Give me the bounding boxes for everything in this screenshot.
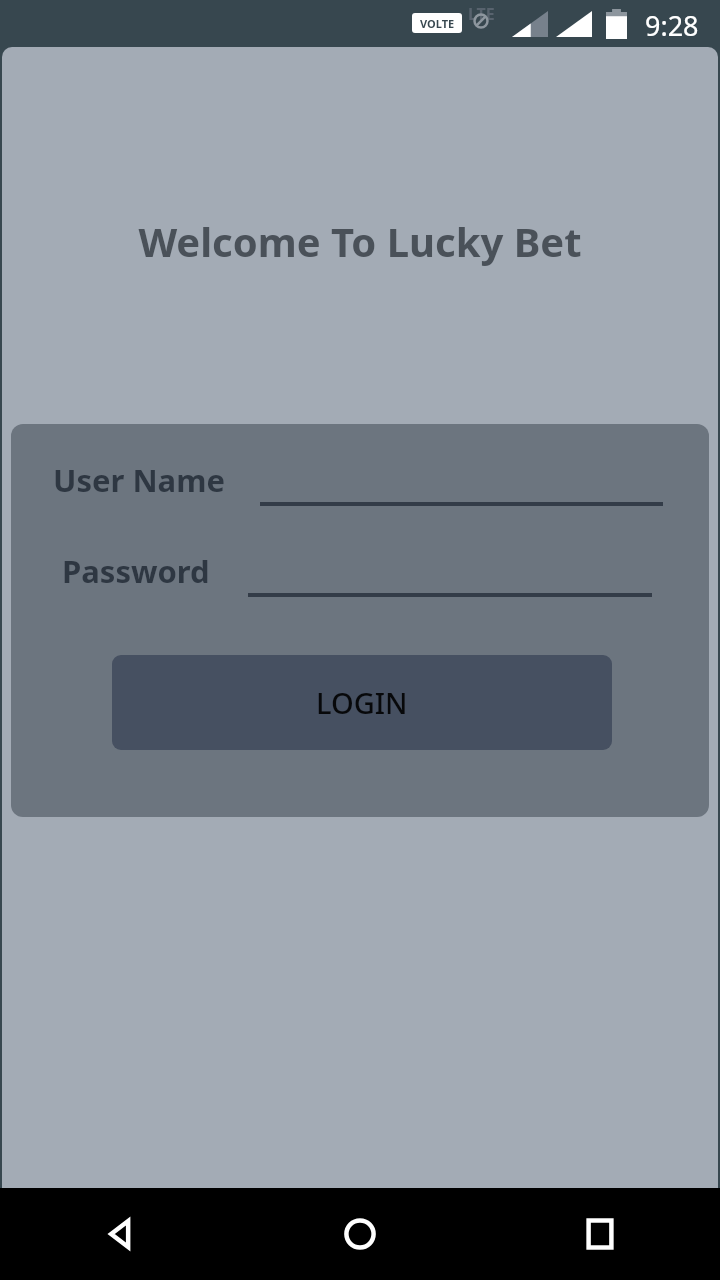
button[interactable]: Recent apps — [480, 1188, 720, 1280]
button[interactable]: LOGIN — [112, 655, 612, 750]
staticText: Password — [62, 550, 210, 592]
button[interactable]: Home — [240, 1188, 480, 1280]
staticText: LTE — [468, 3, 495, 25]
staticText: Welcome To Lucky Bet — [2, 214, 718, 268]
staticText: VOLTE — [420, 16, 455, 31]
button[interactable]: Back — [0, 1188, 240, 1280]
staticText: 9:28 — [645, 7, 699, 44]
staticText: User Name — [53, 459, 225, 501]
staticText: LOGIN — [316, 683, 408, 722]
